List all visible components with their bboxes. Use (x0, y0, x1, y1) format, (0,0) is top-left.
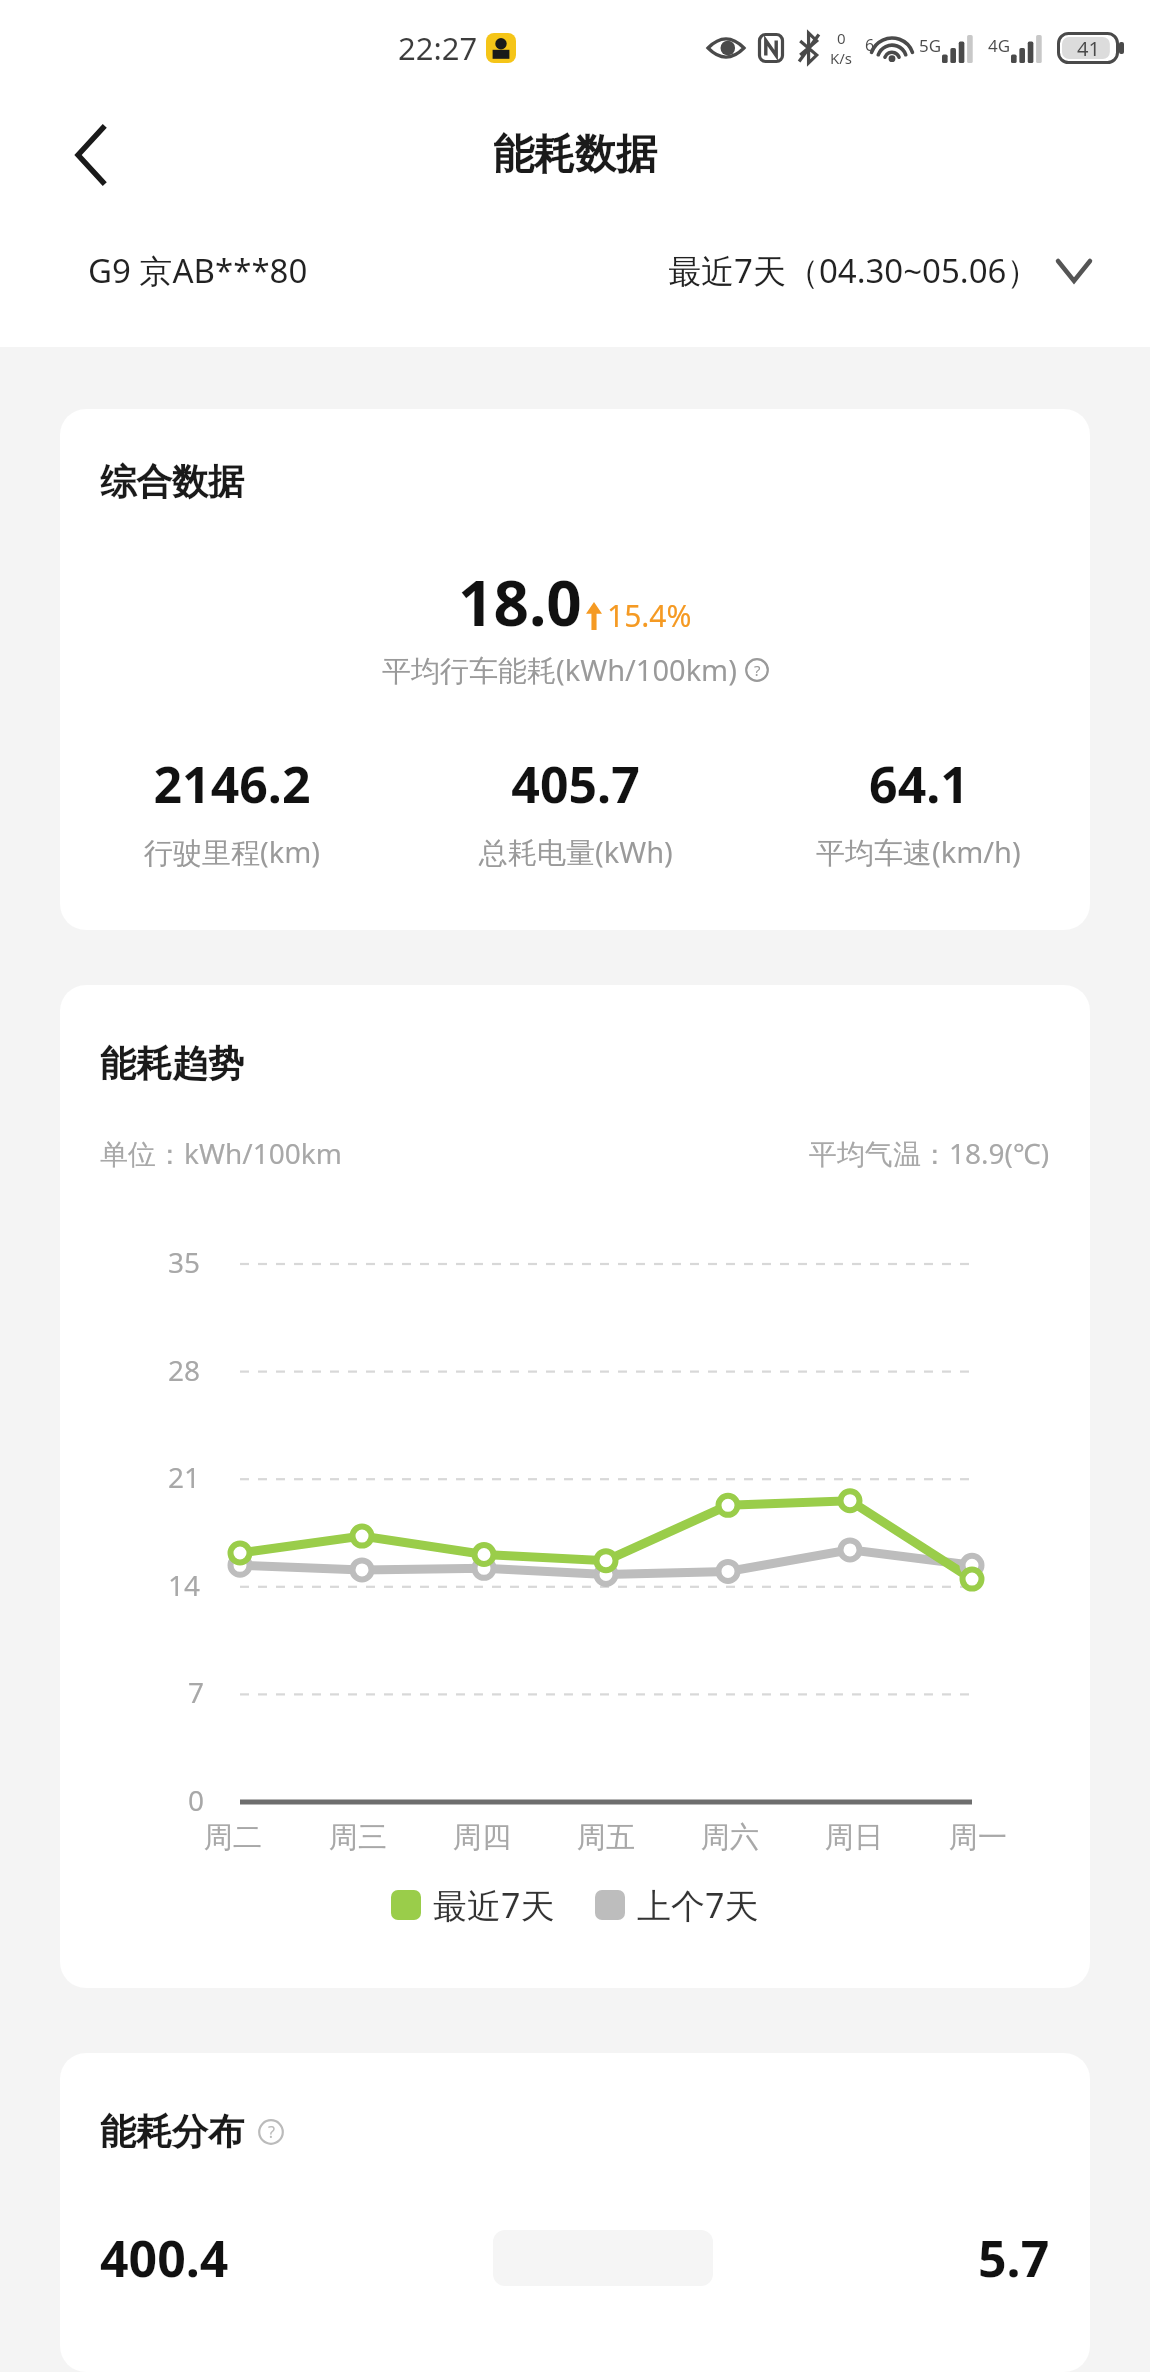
staticText: 综合数据 (100, 459, 244, 504)
button[interactable]: 上个7天 (595, 1882, 759, 1928)
staticText: 22:27 (398, 27, 478, 69)
staticText: 14 (168, 1566, 201, 1604)
staticText: 18.0 (458, 560, 582, 644)
staticText: 平均车速(km/h) (816, 832, 1021, 872)
staticText: 0 (837, 28, 846, 48)
button[interactable]: 405.7 (404, 750, 747, 872)
staticText: 周四 (453, 1819, 511, 1856)
staticText: 能耗趋势 (100, 1041, 244, 1086)
staticText: 最近7天 (433, 1882, 555, 1928)
staticText: K/s (830, 48, 853, 68)
staticText: 平均行车能耗(kWh/100km) (382, 650, 737, 690)
staticText: 6 (865, 34, 875, 56)
staticText: 平均气温：18.9(℃) (809, 1134, 1050, 1172)
staticText: 行驶里程(km) (144, 832, 321, 872)
staticText: ? (754, 660, 761, 680)
staticText: 5G (919, 34, 942, 57)
staticText: 2146.2 (153, 750, 311, 818)
staticText: 上个7天 (637, 1882, 759, 1928)
staticText: 21 (168, 1458, 201, 1496)
staticText: 41 (1077, 35, 1100, 62)
button[interactable]: 64.1 (747, 750, 1090, 872)
staticText: 能耗分布 (100, 2109, 244, 2154)
staticText: 64.1 (869, 750, 969, 818)
staticText: 5.7 (978, 2224, 1050, 2292)
button[interactable]: G9 京AB***80 (88, 248, 308, 293)
staticText: 15.4% (607, 595, 692, 636)
staticText: 周五 (577, 1819, 635, 1856)
button[interactable]: Back (52, 116, 130, 194)
staticText: 周一 (949, 1819, 1007, 1856)
staticText: 最近7天（04.30~05.06） (668, 248, 1040, 293)
staticText: 能耗数据 (493, 129, 657, 181)
staticText: 周二 (204, 1819, 262, 1856)
staticText: 周日 (825, 1819, 883, 1856)
staticText: G9 京AB***80 (88, 248, 308, 293)
staticText: 0 (188, 1781, 205, 1819)
staticText: ? (268, 2121, 275, 2143)
staticText: 28 (168, 1351, 201, 1389)
button[interactable]: 最近7天 (391, 1882, 555, 1928)
button[interactable]: 最近7天（04.30~05.06） (668, 248, 1090, 293)
staticText: 周三 (329, 1819, 387, 1856)
staticText: 周六 (701, 1819, 759, 1856)
staticText: 总耗电量(kWh) (479, 832, 673, 872)
staticText: 单位：kWh/100km (100, 1134, 342, 1172)
staticText: 4G (988, 34, 1011, 57)
button[interactable]: 2146.2 (60, 750, 404, 872)
staticText: 35 (168, 1243, 201, 1281)
staticText: 400.4 (100, 2224, 229, 2292)
staticText: 7 (188, 1673, 205, 1711)
staticText: 405.7 (511, 750, 640, 818)
